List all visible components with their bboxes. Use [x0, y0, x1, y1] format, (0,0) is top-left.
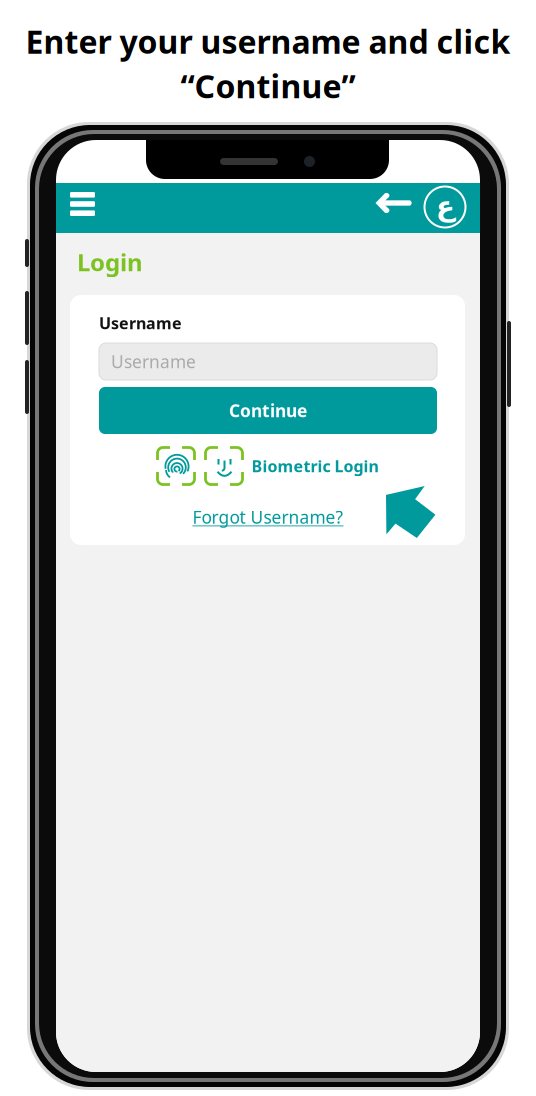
staticText: Continue: [229, 399, 307, 422]
staticText: Login: [77, 246, 143, 278]
staticText: Biometric Login: [251, 455, 378, 477]
button[interactable]: Menu: [61, 184, 104, 224]
button[interactable]: Switch language: [419, 182, 471, 232]
staticText: Forgot Username?: [192, 505, 343, 528]
staticText: Username: [99, 312, 182, 334]
button[interactable]: Biometric Login: [99, 447, 437, 485]
button[interactable]: Continue: [99, 387, 437, 434]
button[interactable]: Forgot Username?: [99, 502, 437, 532]
button[interactable]: Back: [366, 181, 421, 225]
staticText: “Continue”: [180, 64, 355, 107]
staticText: ع: [435, 190, 454, 222]
staticText: Enter your username and click: [25, 20, 510, 62]
staticText: Username: [111, 350, 196, 373]
